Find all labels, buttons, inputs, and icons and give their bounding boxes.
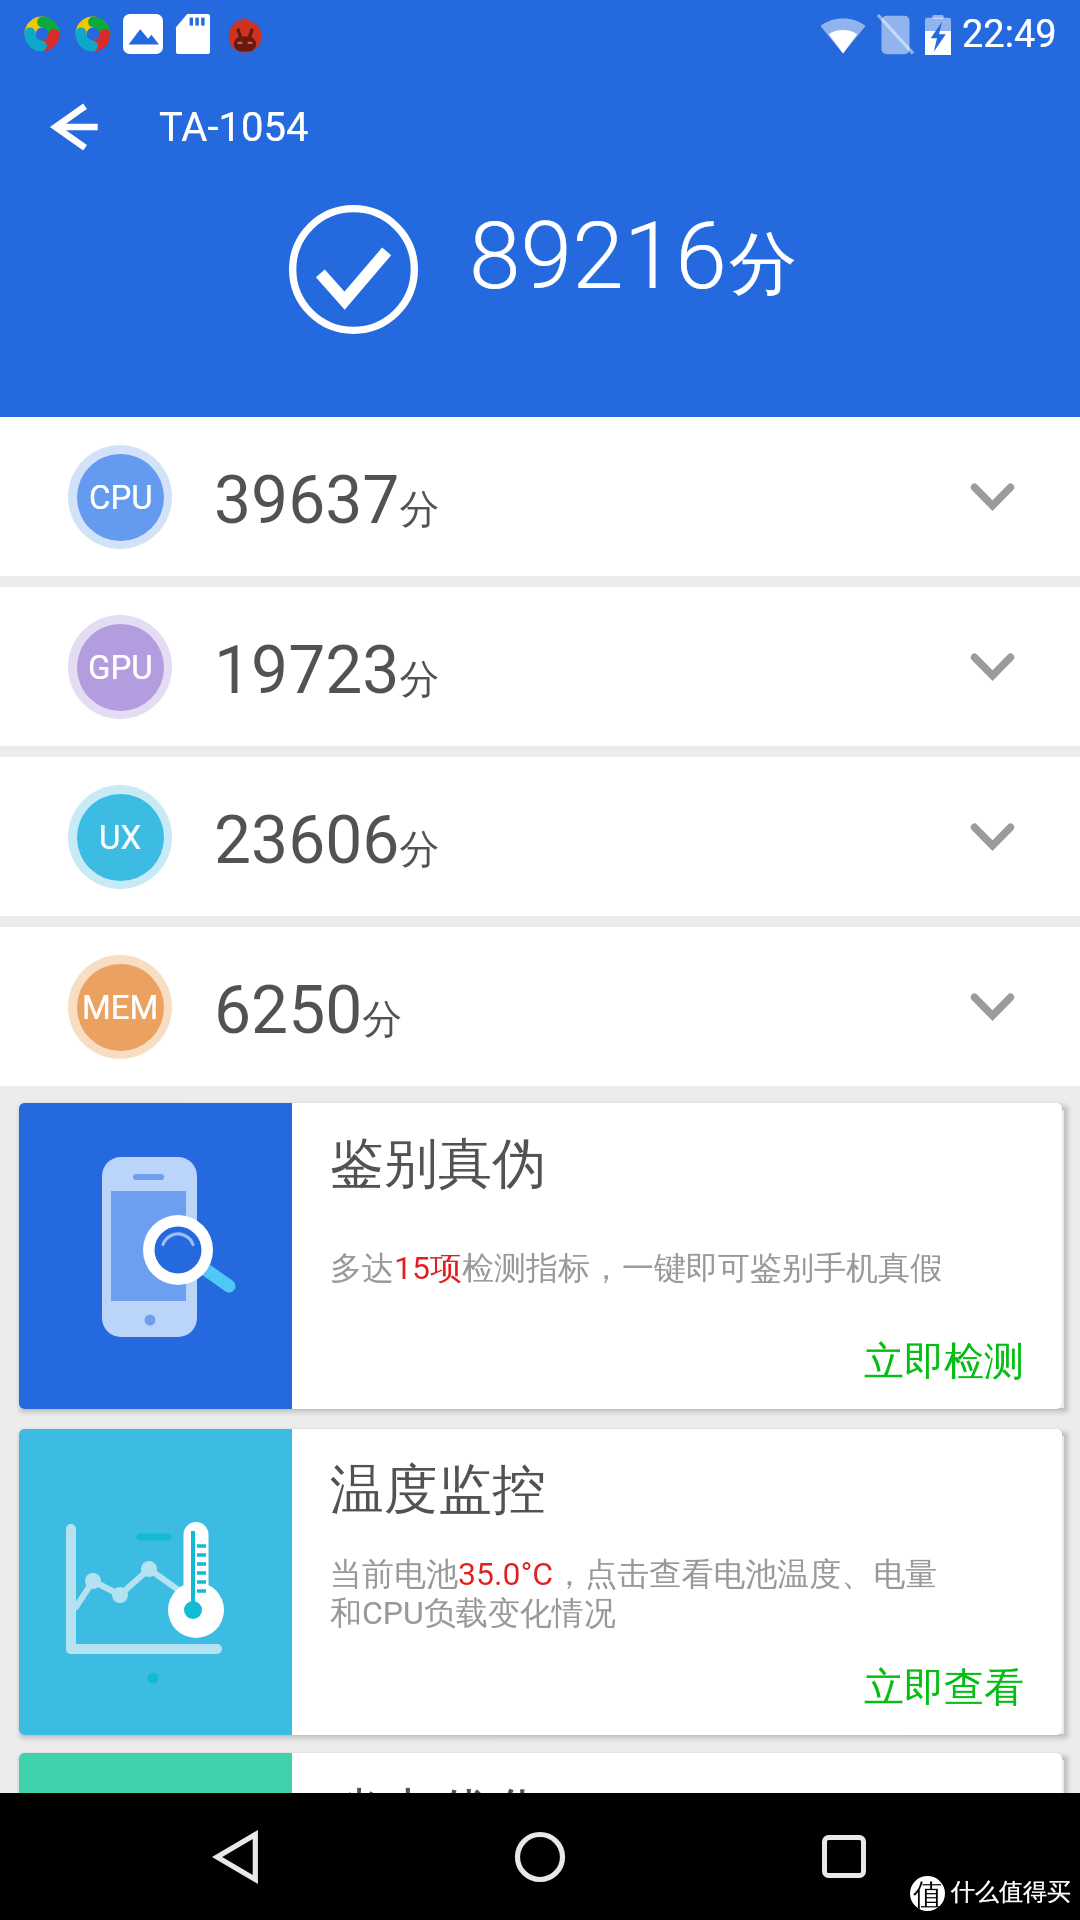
- staticText: 多达15项检测指标，一键即可鉴别手机真假: [330, 1248, 942, 1288]
- button[interactable]: MEM: [0, 927, 1080, 1086]
- staticText: GPU: [88, 648, 153, 687]
- staticText: MEM: [82, 988, 159, 1027]
- button[interactable]: Recents: [794, 1806, 894, 1906]
- staticText: 当前电池35.0°C，点击查看电池温度、电量 和CPU负载变化情况: [330, 1554, 938, 1634]
- button[interactable]: 立即检测: [864, 1336, 1024, 1386]
- button[interactable]: UX: [0, 757, 1080, 916]
- button[interactable]: Back: [186, 1807, 286, 1907]
- button[interactable]: GPU: [0, 587, 1080, 746]
- button[interactable]: 立即查看: [864, 1662, 1024, 1712]
- staticText: 立即查看: [864, 1662, 1024, 1712]
- button[interactable]: Home: [490, 1807, 590, 1907]
- staticText: 什么值得买: [951, 1877, 1071, 1907]
- staticText: 值: [913, 1876, 943, 1911]
- staticText: UX: [99, 818, 142, 857]
- staticText: 89216: [469, 202, 727, 311]
- staticText: 分: [729, 222, 797, 308]
- button[interactable]: 温度监控: [19, 1429, 1062, 1735]
- staticText: 省电优化: [330, 1780, 546, 1848]
- staticText: 39637分: [214, 462, 440, 539]
- button[interactable]: 省电优化: [19, 1753, 1062, 1920]
- button[interactable]: Back: [0, 72, 148, 182]
- staticText: 6250分: [214, 972, 403, 1049]
- button[interactable]: 鉴别真伪: [19, 1103, 1062, 1409]
- staticText: 19723分: [214, 632, 440, 709]
- staticText: 鉴别真伪: [330, 1130, 546, 1198]
- staticText: 温度监控: [330, 1456, 546, 1524]
- staticText: CPU: [89, 478, 153, 517]
- staticText: 23606分: [214, 802, 440, 879]
- staticText: TA-1054: [159, 104, 309, 151]
- staticText: 22:49: [962, 12, 1057, 57]
- staticText: 立即检测: [864, 1336, 1024, 1386]
- button[interactable]: CPU: [0, 417, 1080, 576]
